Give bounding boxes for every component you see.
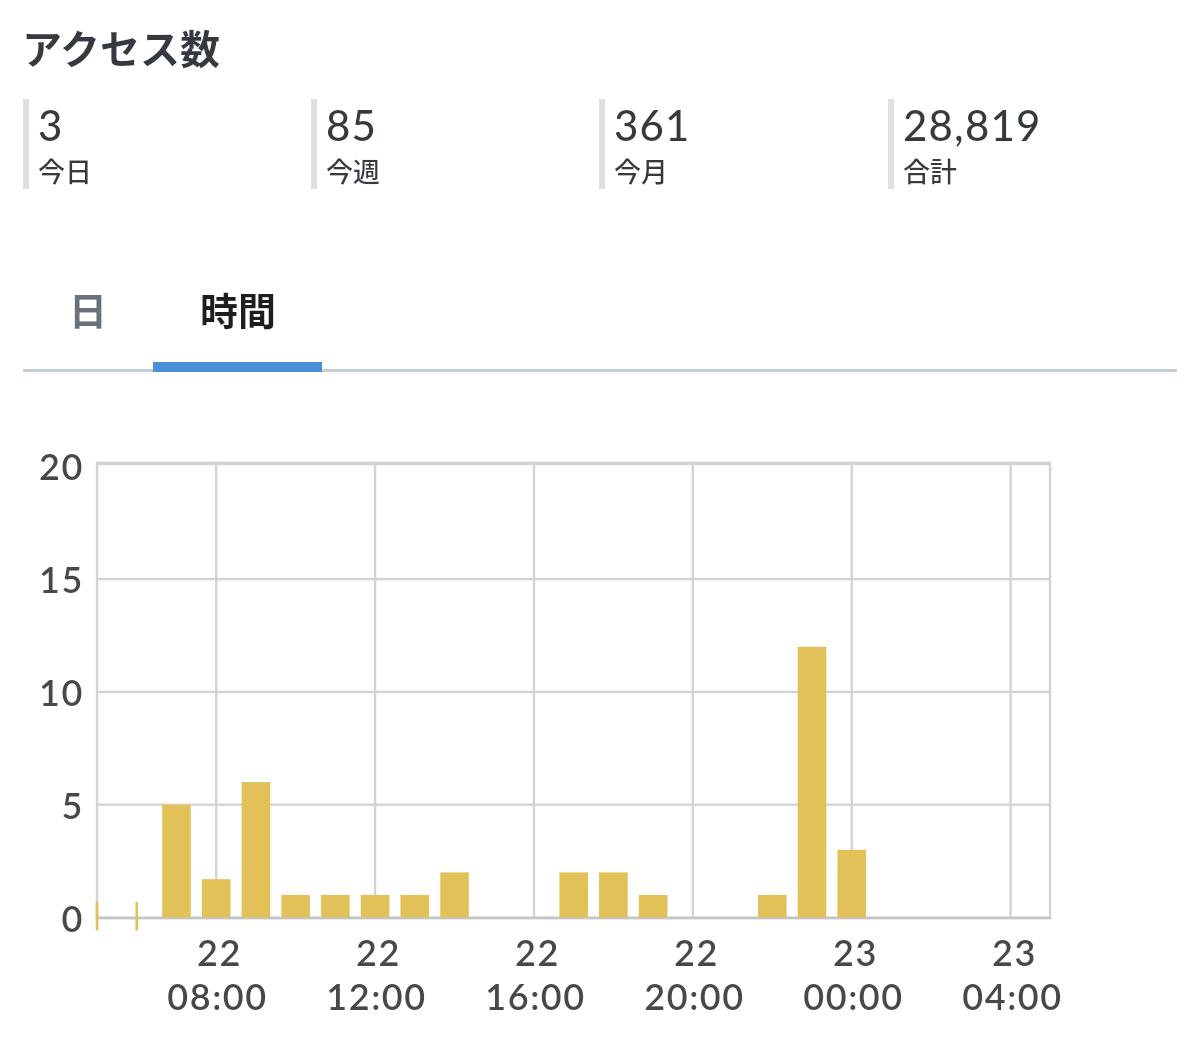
staticText: 20: [39, 444, 84, 487]
staticText: 16:00: [485, 974, 586, 1014]
staticText: 00:00: [803, 974, 904, 1014]
button[interactable]: 85: [311, 99, 599, 189]
staticText: 22: [197, 930, 242, 970]
staticText: 22: [515, 930, 560, 970]
staticText: 12:00: [326, 974, 427, 1014]
staticText: 時間: [200, 281, 277, 336]
staticText: 3: [38, 100, 64, 150]
button[interactable]: 361: [599, 99, 888, 189]
staticText: 23: [833, 930, 878, 970]
staticText: 04:00: [962, 974, 1063, 1014]
staticText: 今週: [326, 151, 380, 190]
staticText: 0: [61, 896, 84, 939]
staticText: 今月: [614, 151, 668, 190]
other: Hourly access count bar chart: [0, 0, 1200, 1048]
staticText: 5: [61, 783, 84, 826]
staticText: 日: [69, 281, 108, 336]
button[interactable]: 時間: [154, 278, 323, 369]
staticText: 22: [674, 930, 719, 970]
staticText: 22: [356, 930, 401, 970]
staticText: 今日: [38, 151, 92, 190]
staticText: 08:00: [167, 974, 268, 1014]
staticText: 85: [326, 100, 378, 150]
staticText: 23: [992, 930, 1037, 970]
staticText: 15: [39, 557, 84, 600]
staticText: 361: [614, 100, 691, 150]
staticText: 10: [39, 670, 84, 713]
staticText: 28,819: [903, 100, 1042, 150]
staticText: 20:00: [644, 974, 745, 1014]
staticText: アクセス数: [22, 18, 220, 76]
button[interactable]: 日: [23, 278, 154, 369]
staticText: 合計: [903, 151, 957, 190]
button[interactable]: 3: [23, 99, 311, 189]
button[interactable]: 28,819: [888, 99, 1177, 189]
